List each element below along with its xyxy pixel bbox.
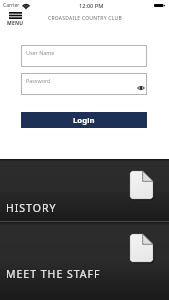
button[interactable]: Menu [5, 11, 26, 27]
staticText: MEET THE STAFF [6, 267, 101, 281]
staticText: User Name [26, 49, 55, 56]
staticText: Carrier [3, 2, 20, 9]
button[interactable]: MEET THE STAFF [0, 222, 169, 300]
staticText: HISTORY [6, 201, 57, 215]
staticText: 12:00 PM [79, 2, 104, 10]
staticText: Login [73, 115, 95, 126]
button[interactable]: User Name [21, 45, 147, 67]
button[interactable]: HISTORY [0, 159, 169, 221]
staticText: CROASDAILE COUNTRY CLUB [48, 15, 122, 22]
button[interactable]: Login [21, 112, 147, 128]
staticText: Password [26, 77, 51, 84]
staticText: MENU [7, 20, 24, 27]
button[interactable]: Password [21, 73, 147, 95]
button[interactable]: Show password [136, 83, 145, 92]
